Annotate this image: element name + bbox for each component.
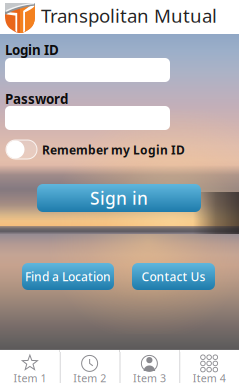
button[interactable]: Item 4 [179, 352, 239, 383]
button[interactable]: Contact Us [132, 263, 215, 290]
staticText: Contact Us [141, 268, 205, 284]
button[interactable]: Item 3 [119, 352, 179, 383]
button[interactable]: Find a Location [22, 263, 114, 290]
button[interactable]: Sign in [37, 184, 201, 212]
staticText: Find a Location [25, 268, 111, 284]
staticText: Item 1 [13, 371, 46, 383]
staticText: Password [5, 90, 68, 108]
staticText: Item 2 [73, 371, 106, 383]
staticText: Item 4 [193, 371, 226, 383]
staticText: Remember my Login ID [42, 142, 185, 158]
button[interactable]: Item 2 [60, 352, 120, 383]
button[interactable]: Item 1 [0, 352, 60, 383]
staticText: Sign in [90, 186, 148, 209]
staticText: Transpolitan Mutual [41, 3, 217, 28]
button[interactable]: Remember my Login ID [6, 138, 186, 160]
staticText: Login ID [5, 41, 59, 59]
staticText: Item 3 [133, 371, 166, 383]
